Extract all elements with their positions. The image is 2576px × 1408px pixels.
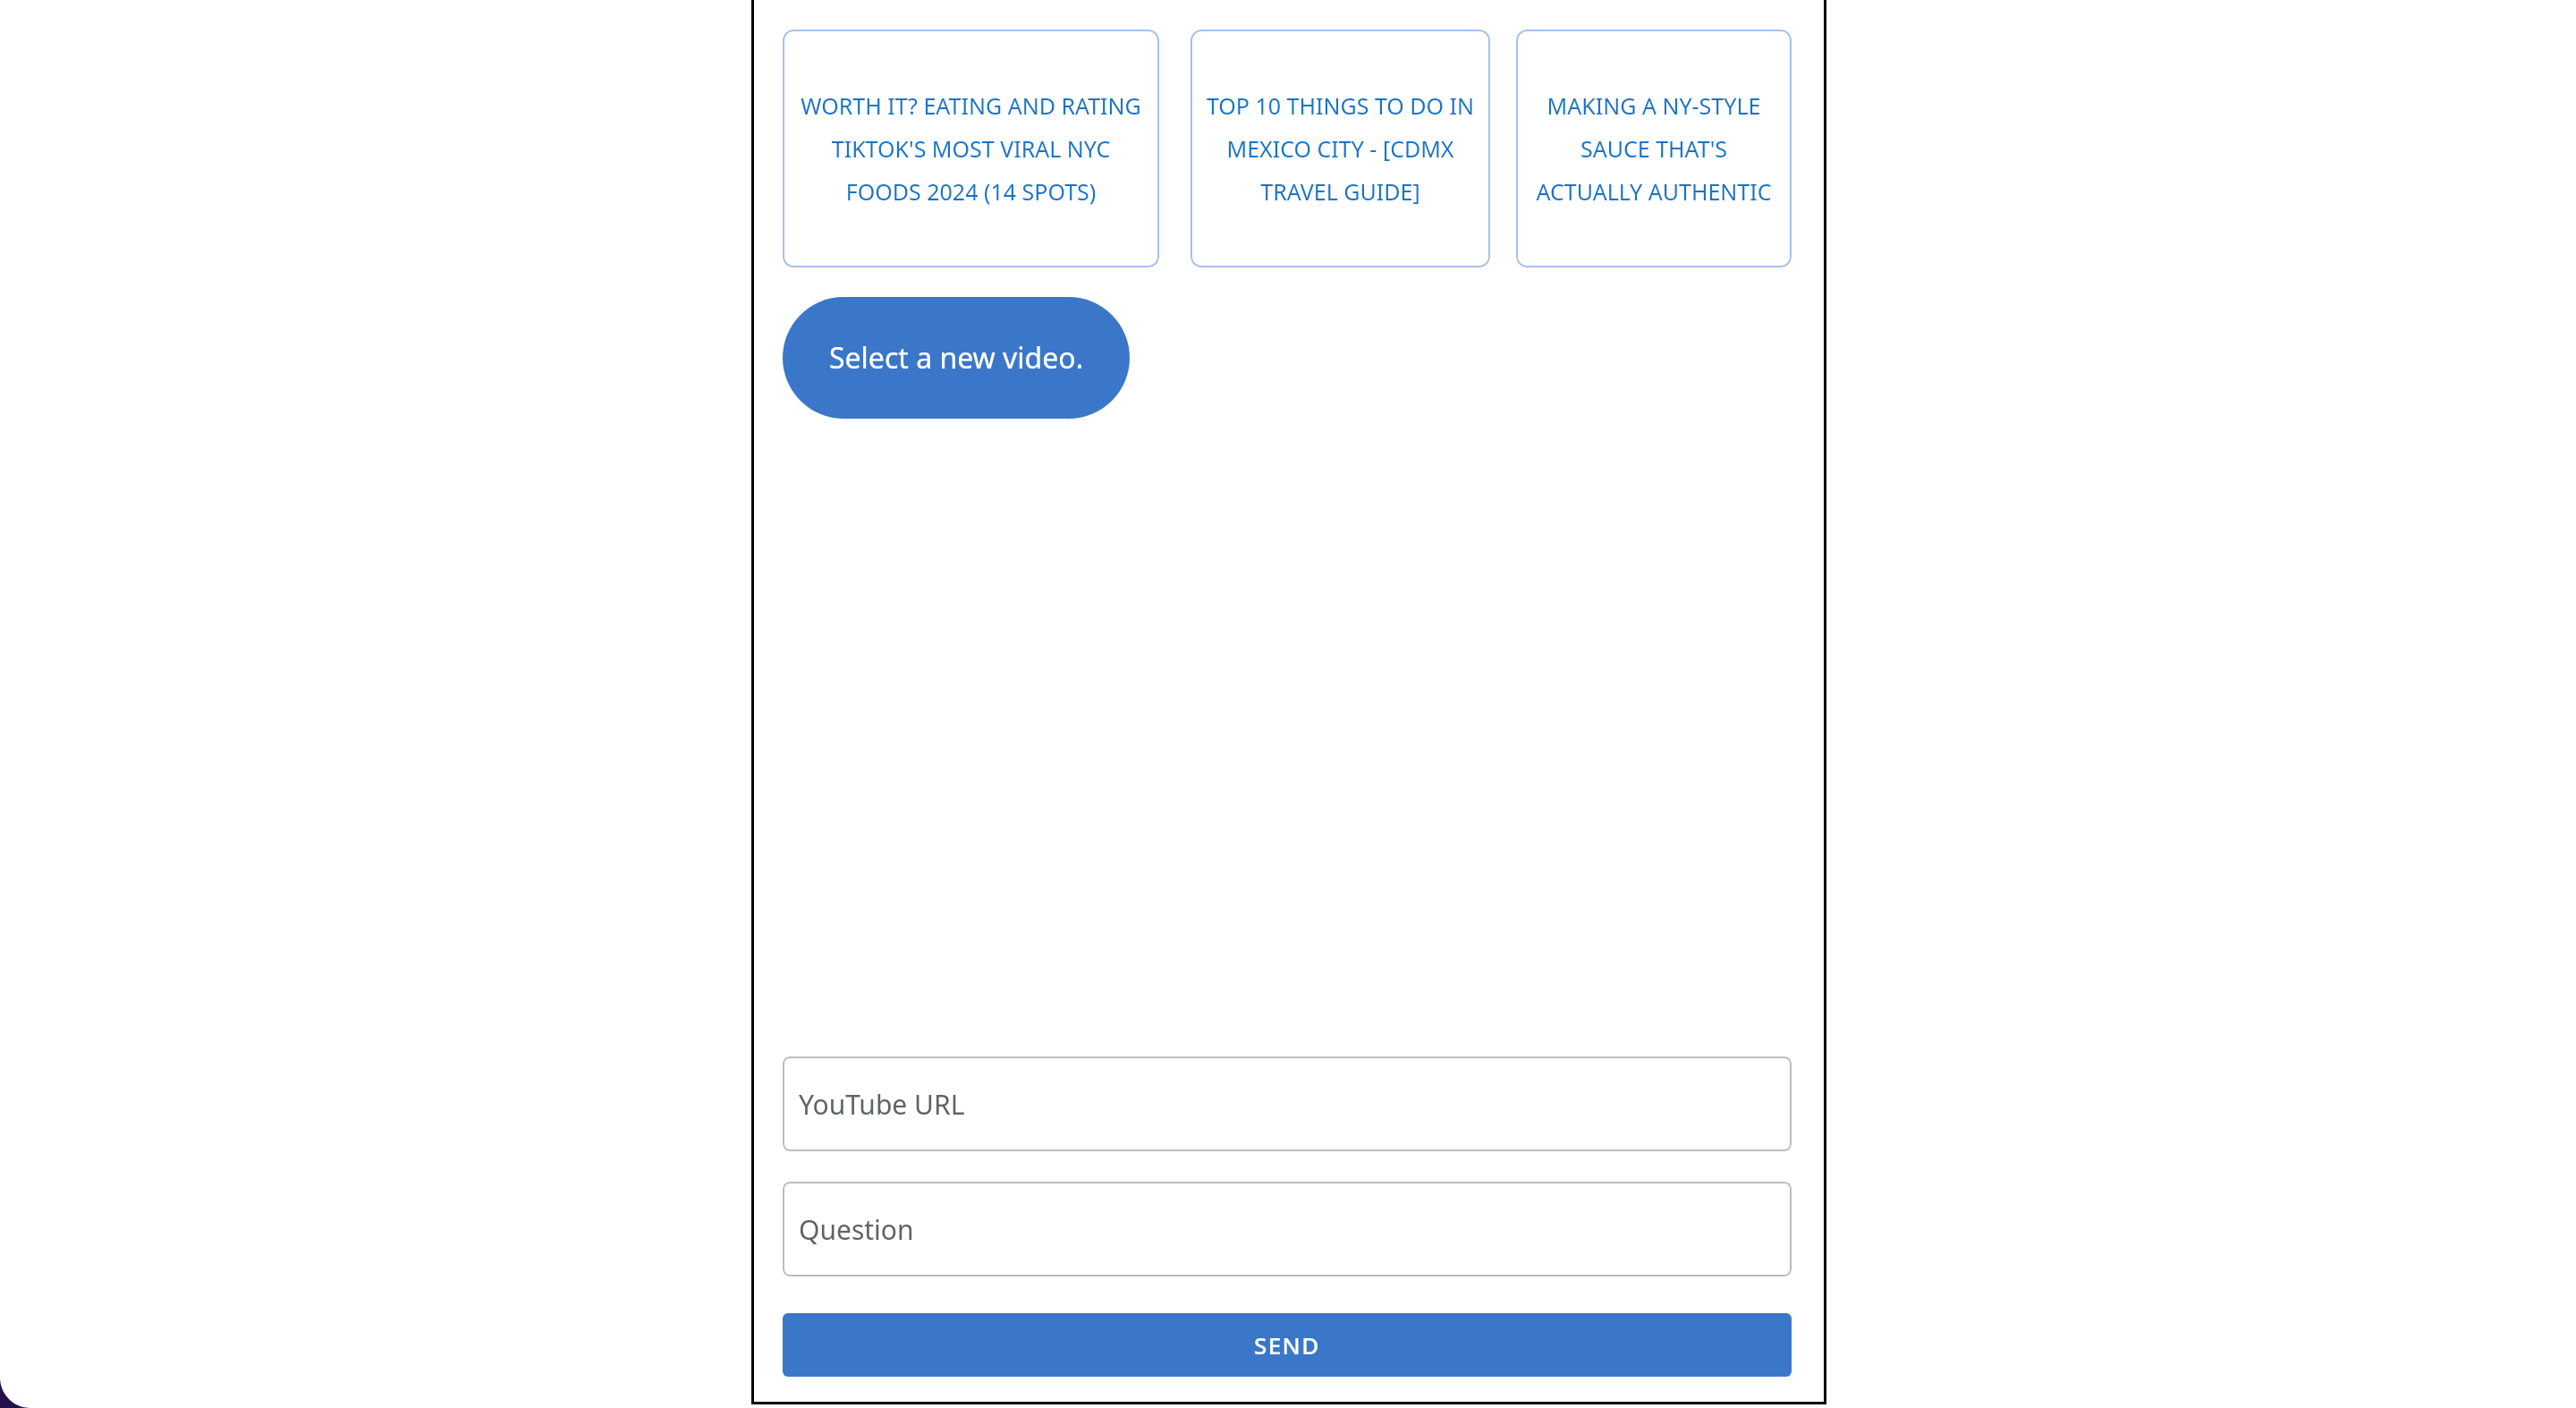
button[interactable]: Question bbox=[783, 1182, 1792, 1277]
button[interactable]: TOP 10 THINGS TO DO IN MEXICO CITY - [CD… bbox=[1191, 30, 1490, 267]
button[interactable]: MAKING A NY-STYLE SAUCE THAT'S ACTUALLY … bbox=[1516, 30, 1792, 267]
staticText: YouTube URL bbox=[799, 1086, 965, 1123]
button[interactable]: Select a new video. bbox=[783, 297, 1130, 419]
staticText: Select a new video. bbox=[829, 338, 1084, 377]
button[interactable]: SEND bbox=[783, 1313, 1792, 1377]
staticText: TOP 10 THINGS TO DO IN MEXICO CITY - [CD… bbox=[1199, 90, 1481, 207]
button[interactable]: WORTH IT? EATING AND RATING TIKTOK'S MOS… bbox=[783, 30, 1159, 267]
button[interactable]: YouTube URL bbox=[783, 1056, 1792, 1151]
staticText: SEND bbox=[1254, 1329, 1320, 1361]
staticText: WORTH IT? EATING AND RATING TIKTOK'S MOS… bbox=[792, 90, 1150, 207]
staticText: Question bbox=[799, 1211, 914, 1248]
staticText: MAKING A NY-STYLE SAUCE THAT'S ACTUALLY … bbox=[1525, 90, 1783, 207]
